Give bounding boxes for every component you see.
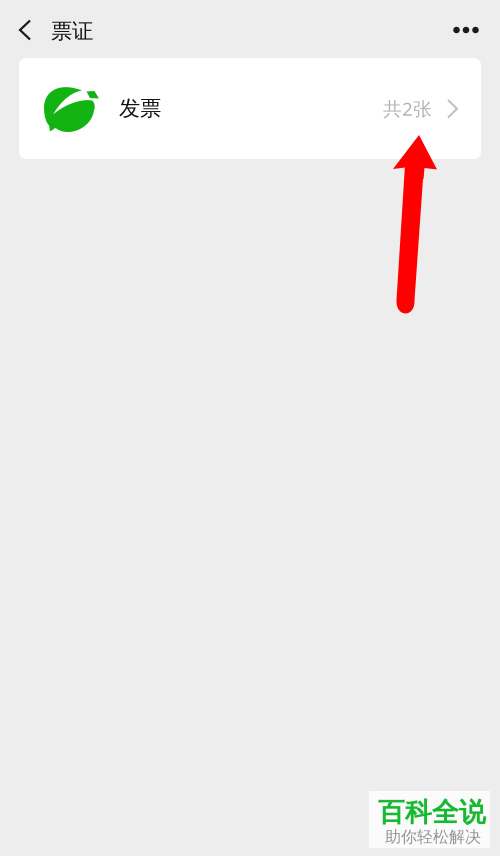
button[interactable]: More [444,8,488,52]
staticText: 百科全说 [378,796,486,829]
button[interactable]: 发票 [19,58,481,159]
staticText: 发票 [119,95,161,122]
staticText: 共2张 [383,96,432,121]
staticText: 助你轻松解决 [385,827,481,847]
staticText: 票证 [51,18,93,44]
button[interactable]: Back [3,8,47,52]
